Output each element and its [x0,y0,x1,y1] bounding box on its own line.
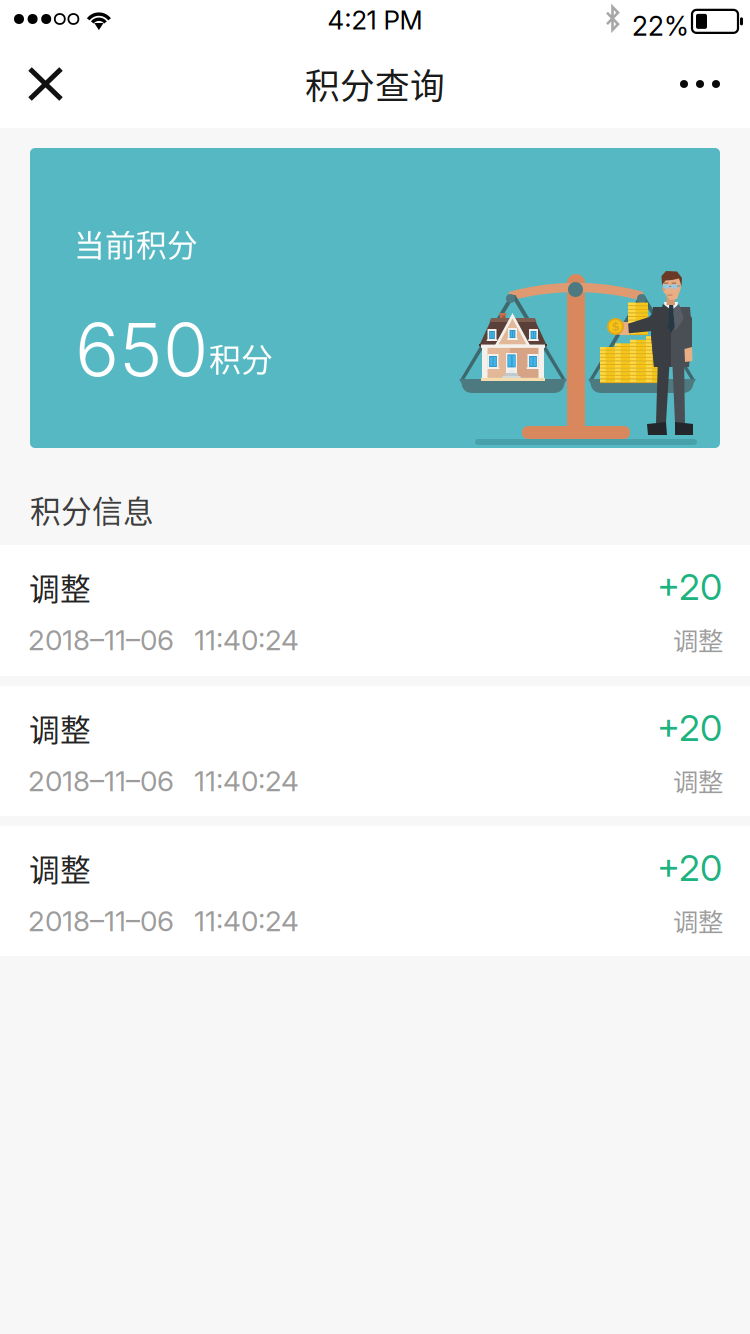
staticText: 当前积分 [74,221,198,265]
staticText: 调整 [29,706,91,750]
staticText: 11:40:24 [194,623,299,657]
staticText: $ [611,319,619,333]
staticText: 650 [75,305,208,394]
staticText: 调整 [673,902,723,939]
button[interactable]: 调整 [0,686,750,816]
staticText: +20 [657,846,722,890]
staticText: 11:40:24 [194,764,299,798]
staticText: +20 [657,706,722,750]
staticText: 调整 [29,565,91,609]
staticText: +20 [657,565,722,609]
staticText: 积分信息 [30,487,154,532]
staticText: 积分查询 [305,59,445,109]
staticText: 调整 [673,621,723,658]
button[interactable]: Close [0,45,91,123]
staticText: 2018–11–06 [28,764,174,798]
button[interactable]: 调整 [0,545,750,676]
staticText: 11:40:24 [194,904,299,938]
staticText: 22% [632,10,689,42]
staticText: 调整 [673,762,723,799]
button[interactable]: More options [650,45,750,123]
staticText: 调整 [29,846,91,890]
staticText: 4:21 PM [327,4,422,36]
staticText: 积分 [209,334,273,381]
staticText: 2018–11–06 [28,904,174,938]
button[interactable]: 调整 [0,826,750,956]
staticText: 2018–11–06 [28,623,174,657]
